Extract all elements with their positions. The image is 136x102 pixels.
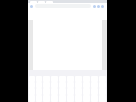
button[interactable]: Back <box>30 5 33 8</box>
